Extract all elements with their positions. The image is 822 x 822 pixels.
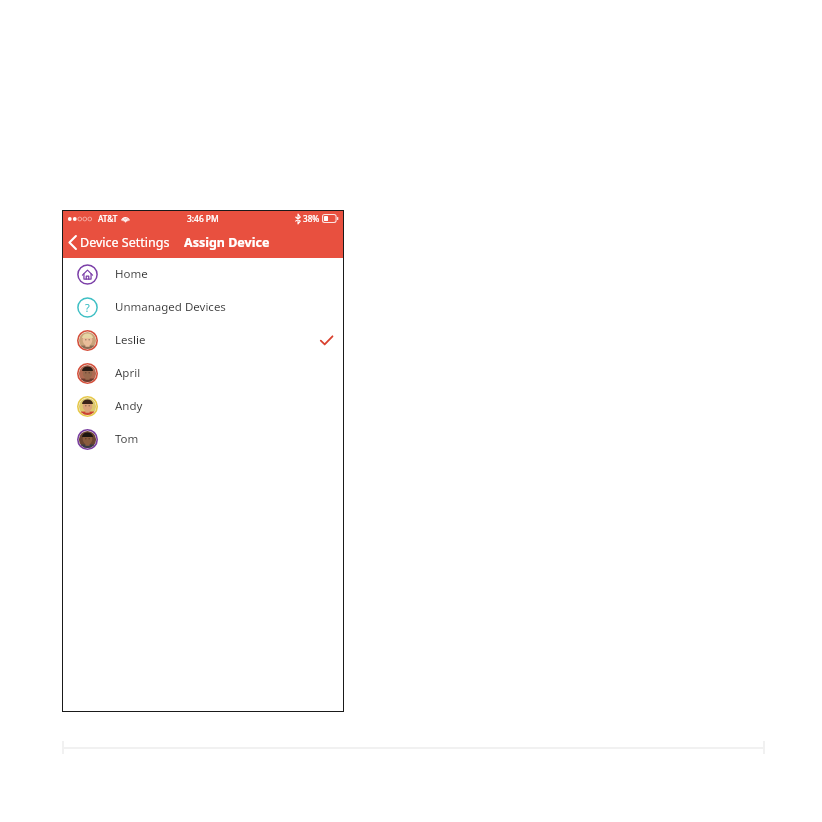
staticText: Home (115, 266, 148, 282)
staticText: 38% (303, 213, 320, 224)
staticText: AT&T (98, 213, 118, 224)
button[interactable]: Tom (62, 423, 344, 455)
button[interactable]: Leslie (62, 324, 344, 356)
staticText: ? (85, 300, 90, 315)
staticText: April (115, 365, 141, 381)
staticText: Leslie (115, 332, 146, 348)
staticText: Andy (115, 398, 143, 414)
staticText: 3:46 PM (187, 213, 219, 224)
staticText: Tom (115, 431, 139, 447)
staticText: Device Settings (80, 234, 170, 251)
button[interactable]: Back to Device Settings (64, 230, 174, 255)
staticText: Unmanaged Devices (115, 299, 226, 315)
staticText: Assign Device (184, 234, 270, 251)
button[interactable]: April (62, 357, 344, 389)
button[interactable]: Home (62, 258, 344, 290)
button[interactable]: ? (62, 291, 344, 323)
button[interactable]: Andy (62, 390, 344, 422)
